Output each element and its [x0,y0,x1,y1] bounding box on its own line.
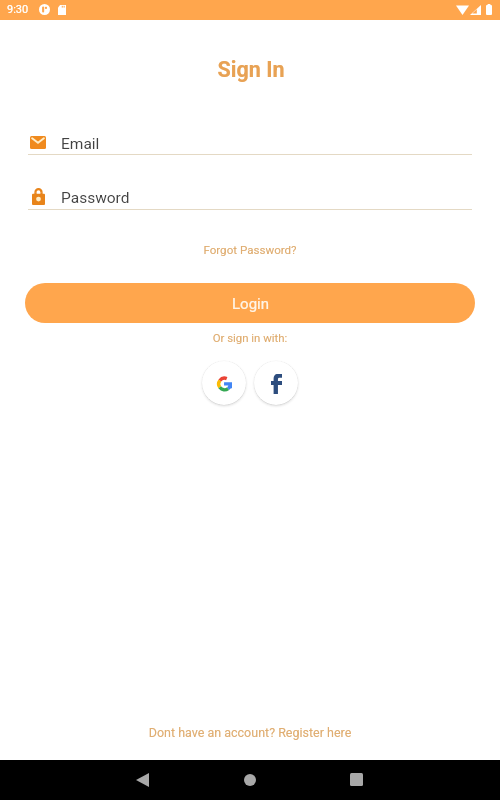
staticText: Login [232,295,269,313]
button[interactable]: Recents [350,773,363,786]
button[interactable]: Forgot Password? [0,243,500,257]
staticText: Password [61,189,130,207]
staticText: Email [61,135,100,153]
button[interactable]: Email [28,130,472,156]
button[interactable]: Back [136,773,149,787]
staticText: Sign In [1,57,500,82]
button[interactable]: Sign in with Facebook [254,361,298,405]
staticText: 9:30 [7,3,29,16]
button[interactable]: Login [25,283,475,323]
button[interactable]: Home [244,774,256,786]
button[interactable]: Sign in with Google [202,361,246,405]
button[interactable]: Dont have an account? Register here [0,725,500,740]
staticText: Or sign in with: [0,331,500,344]
button[interactable]: Password [28,185,472,211]
